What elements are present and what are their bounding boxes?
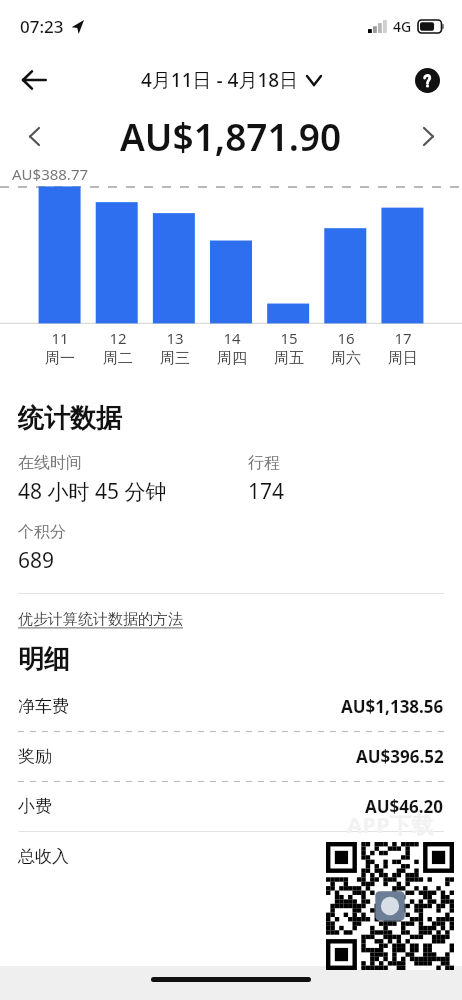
staticText: 16 <box>337 328 355 348</box>
staticText: 周三 <box>160 349 190 368</box>
staticText: 13 <box>166 328 184 348</box>
staticText: 行程 <box>248 453 280 473</box>
button[interactable]: Next week <box>410 118 446 154</box>
staticText: APP下载 <box>347 809 434 839</box>
staticText: AU$388.77 <box>12 164 89 184</box>
staticText: 在线时间 <box>18 453 82 473</box>
staticText: 周五 <box>274 349 304 368</box>
staticText: 12 <box>109 328 127 348</box>
button[interactable]: 优步计算统计数据的方法 <box>18 610 183 629</box>
staticText: 周四 <box>217 349 247 368</box>
staticText: 总收入 <box>18 846 69 867</box>
staticText: AU$1,871.90 <box>120 111 342 161</box>
button[interactable]: 奖励 <box>18 732 444 782</box>
staticText: 11 <box>51 328 69 348</box>
button[interactable]: 12 <box>89 328 146 368</box>
button[interactable]: 15 <box>260 328 317 368</box>
button[interactable]: 总收入 <box>18 832 444 881</box>
button[interactable]: Previous week <box>16 118 52 154</box>
staticText: 周二 <box>103 349 133 368</box>
button[interactable]: 17 <box>374 328 431 368</box>
staticText: 优步计算统计数据的方法 <box>18 610 183 629</box>
button[interactable]: 13 <box>146 328 203 368</box>
staticText: 明细 <box>18 643 70 676</box>
button[interactable]: Back <box>10 56 58 104</box>
staticText: 4月11日 - 4月18日 <box>141 67 299 93</box>
staticText: 14 <box>223 328 241 348</box>
staticText: 174 <box>248 477 285 506</box>
staticText: AU$1,138.56 <box>341 695 444 718</box>
staticText: 4G <box>393 17 412 36</box>
button[interactable]: 16 <box>317 328 374 368</box>
button[interactable]: 11 <box>31 328 89 368</box>
staticText: 统计数据 <box>18 402 122 435</box>
staticText: 个积分 <box>18 522 66 542</box>
button[interactable]: 14 <box>203 328 260 368</box>
staticText: 奖励 <box>18 746 52 767</box>
button[interactable]: Help <box>404 57 450 103</box>
staticText: 07:23 <box>20 15 64 38</box>
staticText: 17 <box>394 328 412 348</box>
staticText: 净车费 <box>18 696 69 717</box>
staticText: AU$1,581.28 <box>341 845 444 868</box>
staticText: 15 <box>280 328 298 348</box>
button[interactable]: 4月11日 - 4月18日 <box>141 67 321 93</box>
staticText: AU$396.52 <box>356 745 444 768</box>
staticText: AU$46.20 <box>365 795 444 818</box>
button[interactable]: 净车费 <box>18 682 444 732</box>
staticText: 周六 <box>331 349 361 368</box>
staticText: 周一 <box>45 349 75 368</box>
staticText: 689 <box>18 546 55 575</box>
staticText: 周日 <box>388 349 418 368</box>
staticText: 小费 <box>18 796 52 817</box>
button[interactable]: 小费 <box>18 782 444 832</box>
staticText: 48 小时 45 分钟 <box>18 477 167 506</box>
